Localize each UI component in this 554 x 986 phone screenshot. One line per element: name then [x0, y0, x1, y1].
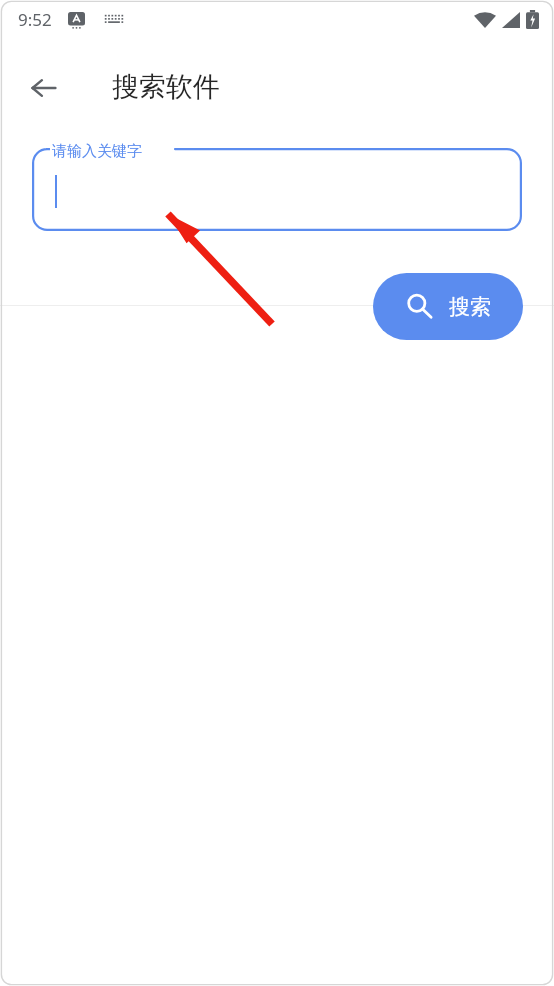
- staticText: 请输入关键字: [52, 142, 142, 161]
- button[interactable]: [32, 148, 522, 231]
- button[interactable]: Back: [20, 64, 68, 112]
- staticText: 搜索软件: [112, 70, 220, 104]
- staticText: 9:52: [18, 8, 52, 31]
- staticText: 搜索: [449, 294, 491, 320]
- button[interactable]: 搜索: [373, 273, 523, 340]
